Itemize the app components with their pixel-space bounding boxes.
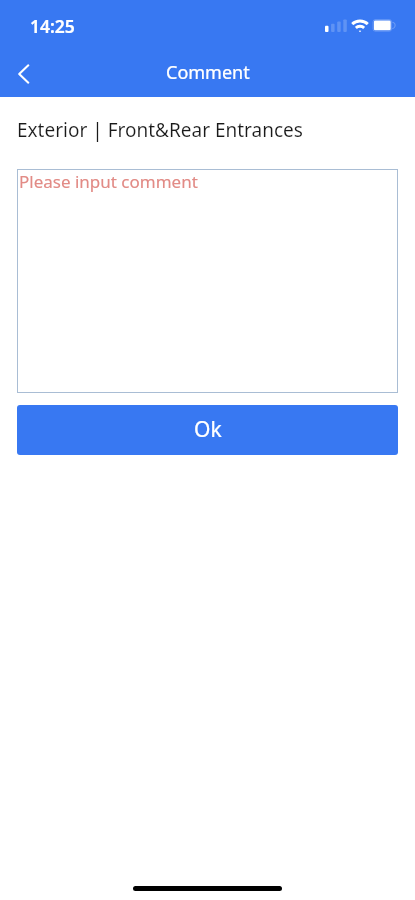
staticText: Comment <box>166 60 250 85</box>
staticText: Please input comment <box>19 170 198 193</box>
staticText: Exterior | Front&Rear Entrances <box>17 117 303 143</box>
staticText: 14:25 <box>30 14 75 38</box>
staticText: Ok <box>194 415 222 444</box>
button[interactable]: Please input comment <box>17 169 398 393</box>
button[interactable]: Ok <box>17 405 398 455</box>
button[interactable]: Back <box>0 50 48 98</box>
